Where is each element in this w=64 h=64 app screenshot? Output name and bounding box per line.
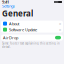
staticText: > (59, 27, 61, 32)
staticText: Software Update (9, 27, 37, 32)
button[interactable]: Software Update (1, 27, 63, 33)
staticText: General (2, 8, 33, 19)
staticText: 9:41 (2, 0, 9, 5)
button[interactable]: About (1, 21, 63, 27)
staticText: > (59, 21, 61, 26)
staticText: Some footer text explaining this setting… (2, 42, 60, 49)
staticText: AirDrop (3, 35, 18, 40)
button[interactable]: AirDrop (1, 35, 63, 41)
staticText: About (9, 21, 19, 26)
staticText: Settings (2, 3, 15, 9)
